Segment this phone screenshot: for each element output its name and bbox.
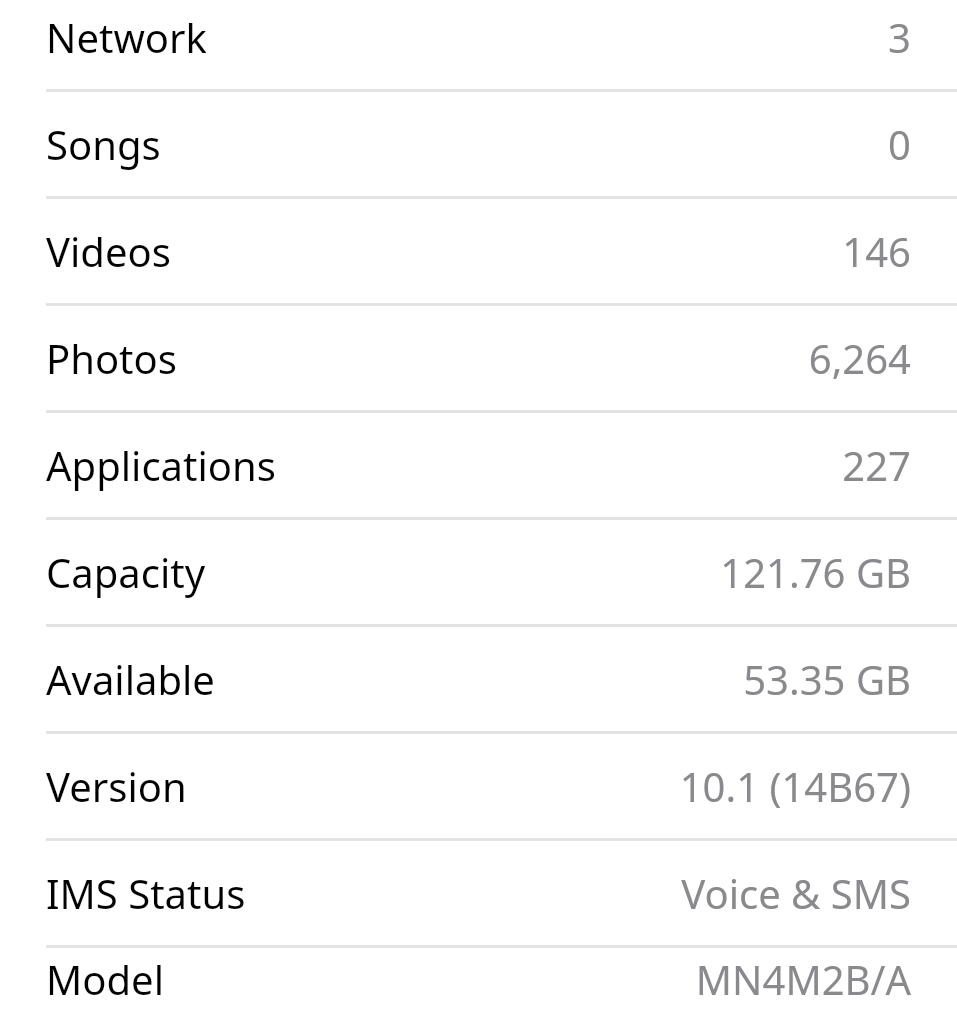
- button[interactable]: Photos: [0, 306, 957, 410]
- staticText: Videos: [46, 224, 171, 278]
- button[interactable]: Videos: [0, 199, 957, 303]
- staticText: Voice & SMS: [681, 866, 911, 920]
- staticText: 6,264: [808, 331, 911, 385]
- staticText: MN4M2B/A: [695, 952, 911, 1006]
- staticText: Capacity: [46, 545, 206, 599]
- staticText: 3: [888, 10, 911, 64]
- button[interactable]: IMS Status: [0, 841, 957, 945]
- button[interactable]: Model: [0, 948, 957, 1009]
- staticText: 227: [842, 438, 911, 492]
- staticText: 10.1 (14B67): [679, 759, 911, 813]
- staticText: 53.35 GB: [743, 652, 911, 706]
- staticText: Photos: [46, 331, 177, 385]
- staticText: Network: [46, 10, 207, 64]
- staticText: 146: [842, 224, 911, 278]
- button[interactable]: Available: [0, 627, 957, 731]
- button[interactable]: Capacity: [0, 520, 957, 624]
- staticText: IMS Status: [46, 866, 246, 920]
- button[interactable]: Network: [0, 0, 957, 89]
- staticText: 121.76 GB: [720, 545, 911, 599]
- staticText: Applications: [46, 438, 276, 492]
- staticText: Model: [46, 952, 164, 1006]
- staticText: Songs: [46, 117, 161, 171]
- button[interactable]: Version: [0, 734, 957, 838]
- staticText: Available: [46, 652, 215, 706]
- button[interactable]: Applications: [0, 413, 957, 517]
- button[interactable]: Songs: [0, 92, 957, 196]
- staticText: Version: [46, 759, 187, 813]
- staticText: 0: [888, 117, 911, 171]
